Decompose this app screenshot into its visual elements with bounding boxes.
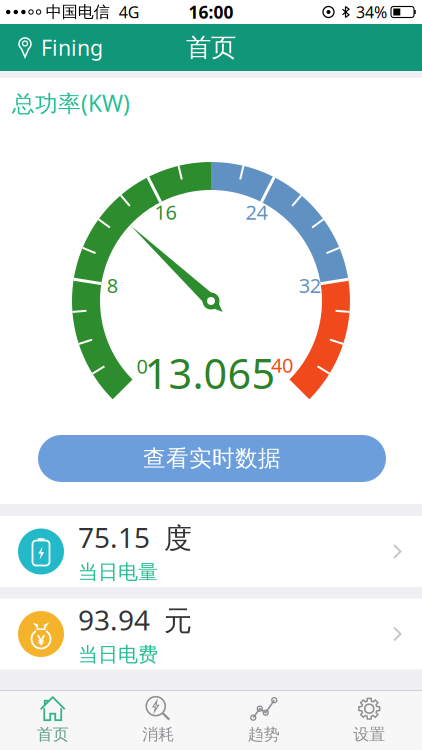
- button[interactable]: 查看实时数据: [38, 435, 386, 482]
- button[interactable]: ¥: [0, 598, 422, 669]
- staticText: 设置: [353, 725, 385, 744]
- button[interactable]: 设置: [316, 690, 422, 750]
- staticText: 75.15 度: [78, 519, 192, 556]
- staticText: Fining: [41, 33, 103, 62]
- staticText: 首页: [186, 32, 236, 63]
- staticText: 当日电量: [78, 560, 158, 584]
- staticText: 中国电信: [46, 2, 110, 22]
- staticText: 总功率(KW): [12, 88, 130, 118]
- staticText: 0: [136, 353, 147, 379]
- staticText: 93.94 元: [78, 601, 192, 638]
- staticText: 16: [155, 199, 177, 225]
- staticText: 24: [245, 199, 267, 225]
- staticText: 查看实时数据: [143, 445, 281, 472]
- staticText: 32: [299, 272, 321, 299]
- staticText: 趋势: [248, 725, 280, 744]
- button[interactable]: 趋势: [211, 690, 316, 750]
- staticText: 34%: [356, 1, 387, 23]
- staticText: 16:00: [188, 0, 233, 23]
- button[interactable]: 首页: [0, 690, 105, 750]
- staticText: 首页: [37, 725, 69, 744]
- staticText: ¥: [37, 630, 45, 649]
- staticText: 13.065: [144, 346, 275, 400]
- staticText: 当日电费: [78, 642, 158, 667]
- staticText: 40: [271, 352, 293, 378]
- staticText: 消耗: [142, 725, 174, 744]
- button[interactable]: 消耗: [105, 690, 211, 750]
- staticText: 8: [107, 272, 118, 299]
- staticText: 4G: [119, 1, 140, 23]
- button[interactable]: Fining: [0, 33, 103, 62]
- button[interactable]: 75.15 度: [0, 516, 422, 587]
